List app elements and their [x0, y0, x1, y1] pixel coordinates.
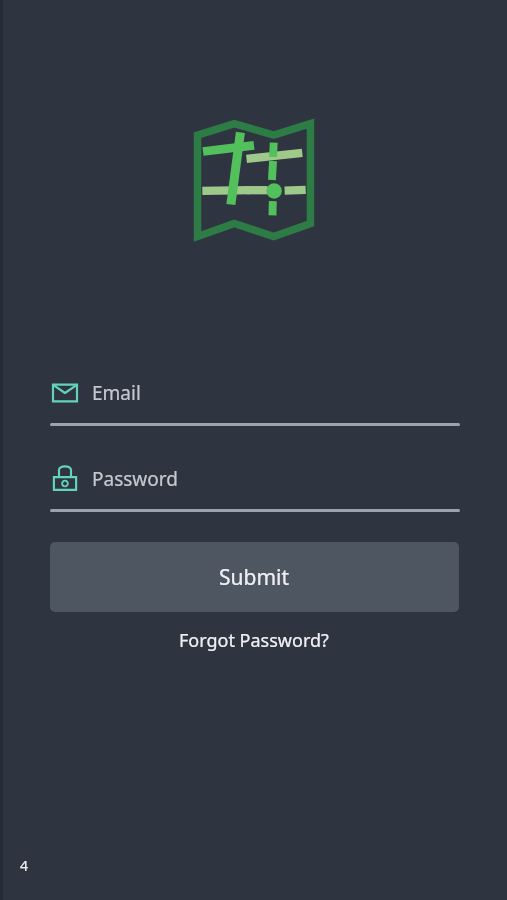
button[interactable]: Email: [50, 376, 460, 426]
staticText: Email: [92, 380, 141, 406]
staticText: Submit: [219, 563, 290, 592]
other: Password: [50, 464, 80, 494]
button[interactable]: Password: [50, 462, 460, 512]
button[interactable]: Forgot Password?: [169, 623, 339, 658]
staticText: Forgot Password?: [179, 628, 329, 653]
button[interactable]: Submit: [50, 542, 459, 612]
other: Email: [50, 378, 80, 408]
staticText: 4: [20, 856, 29, 875]
staticText: Password: [92, 466, 178, 492]
